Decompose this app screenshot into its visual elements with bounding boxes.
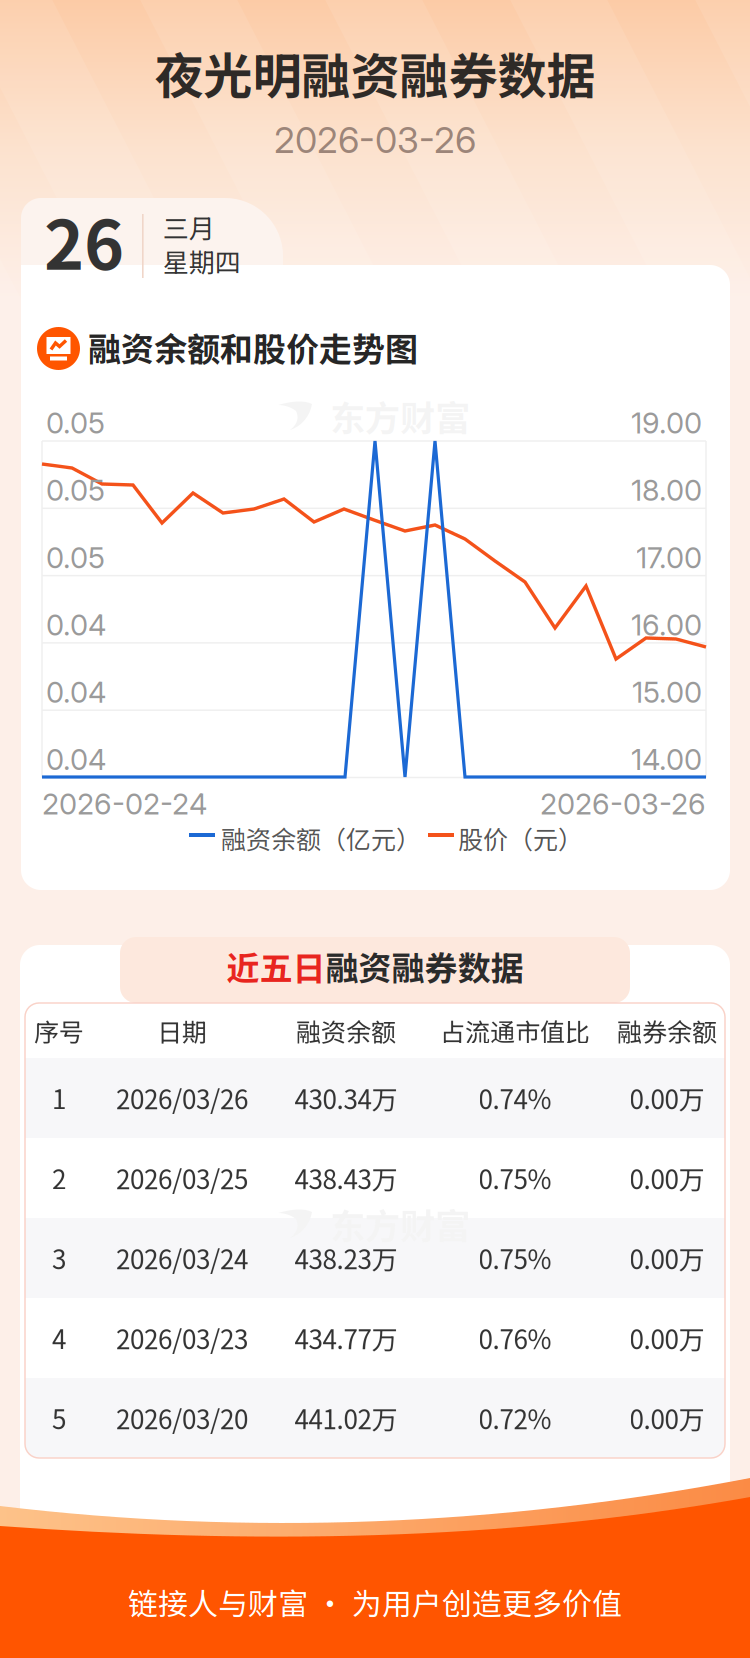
staticText: 日期 — [157, 1012, 207, 1049]
staticText: 17.00 — [636, 540, 702, 575]
staticText: 三月 — [163, 208, 215, 246]
staticText: 19.00 — [631, 405, 702, 441]
staticText: 0.75% — [478, 1159, 551, 1197]
staticText: 5 — [52, 1399, 66, 1437]
staticText: 438.43万 — [294, 1159, 397, 1197]
staticText: 1 — [52, 1079, 66, 1117]
staticText: 2026/03/25 — [116, 1159, 248, 1197]
staticText: 占流通市值比 — [440, 1012, 590, 1049]
staticText: 0.05 — [46, 405, 105, 441]
staticText: 0.00万 — [629, 1399, 704, 1437]
staticText: 2 — [52, 1159, 66, 1197]
staticText: 15.00 — [632, 675, 702, 710]
staticText: 2026-03-26 — [540, 786, 706, 822]
staticText: 18.00 — [631, 473, 702, 508]
staticText: 序号 — [34, 1012, 84, 1049]
staticText: 0.04 — [46, 675, 106, 710]
staticText: 融券余额 — [617, 1012, 717, 1049]
staticText: 438.23万 — [294, 1239, 397, 1277]
staticText: 430.34万 — [294, 1079, 397, 1117]
staticText: 0.74% — [478, 1079, 551, 1117]
staticText: 14.00 — [631, 742, 702, 777]
staticText: 0.00万 — [629, 1079, 704, 1117]
staticText: 3 — [52, 1239, 66, 1277]
staticText: 2026/03/20 — [116, 1399, 248, 1437]
staticText: 股价（元） — [458, 820, 583, 856]
staticText: 链接人与财富 · 为用户创造更多价值 — [128, 1580, 622, 1624]
staticText: 近五日 — [226, 942, 325, 990]
staticText: 441.02万 — [294, 1399, 397, 1437]
staticText: 0.76% — [478, 1319, 551, 1357]
staticText: 0.04 — [46, 742, 106, 777]
staticText: 2026-02-24 — [42, 786, 207, 822]
staticText: 434.77万 — [294, 1319, 397, 1357]
staticText: 16.00 — [631, 607, 702, 642]
staticText: 2026/03/23 — [116, 1319, 248, 1357]
staticText: 夜光明融资融券数据 — [154, 37, 595, 108]
staticText: 4 — [52, 1319, 66, 1357]
staticText: 融资融券数据 — [325, 942, 523, 990]
staticText: 0.75% — [478, 1239, 551, 1277]
staticText: 0.00万 — [629, 1239, 704, 1277]
staticText: 2026-03-26 — [274, 118, 476, 162]
staticText: 0.72% — [478, 1399, 551, 1437]
staticText: 0.05 — [46, 540, 105, 575]
staticText: 融资余额 — [296, 1012, 396, 1049]
staticText: 2026/03/26 — [116, 1079, 248, 1117]
staticText: 0.00万 — [629, 1319, 704, 1357]
staticText: 东方财富 — [330, 391, 470, 441]
staticText: 星期四 — [163, 242, 241, 280]
staticText: 0.00万 — [629, 1159, 704, 1197]
staticText: 0.05 — [46, 473, 105, 508]
staticText: 融资余额（亿元） — [221, 820, 421, 856]
staticText: 0.04 — [46, 607, 106, 642]
staticText: 融资余额和股价走势图 — [88, 323, 418, 371]
staticText: 东方财富 — [330, 1199, 470, 1249]
staticText: 26 — [44, 191, 124, 289]
staticText: 2026/03/24 — [116, 1239, 248, 1277]
